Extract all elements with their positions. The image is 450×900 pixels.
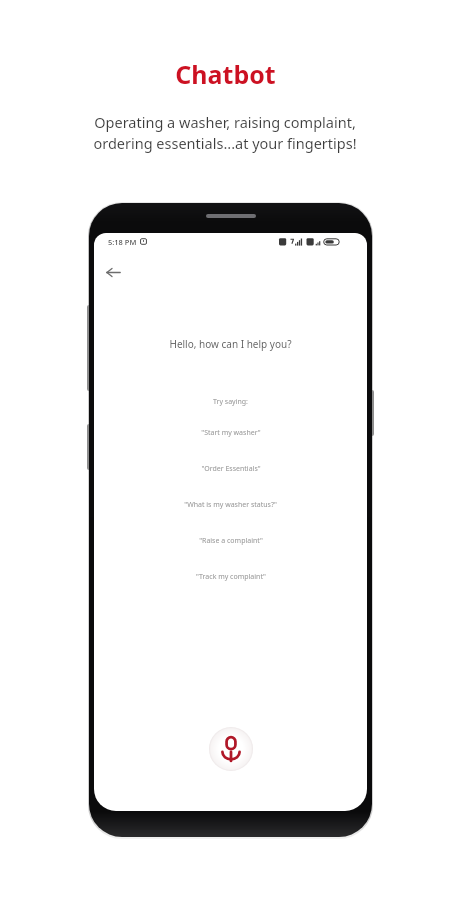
staticText: 5:18 PM <box>108 237 137 247</box>
staticText: Operating a washer, raising complaint, o… <box>93 112 357 154</box>
button[interactable]: Voice input microphone <box>209 727 253 771</box>
button[interactable]: "Raise a complaint" <box>94 536 367 546</box>
button[interactable]: "What is my washer status?" <box>94 500 367 510</box>
staticText: Chatbot <box>175 57 276 91</box>
button[interactable]: Back <box>96 255 130 289</box>
button[interactable]: "Track my complaint" <box>94 572 367 582</box>
staticText: "Raise a complaint" <box>199 536 263 546</box>
staticText: "Track my complaint" <box>196 572 266 582</box>
staticText: "Start my washer" <box>201 428 261 438</box>
staticText: "What is my washer status?" <box>184 500 277 510</box>
staticText: Try saying: <box>213 397 248 407</box>
staticText: Hello, how can I help you? <box>169 337 292 351</box>
staticText: "Order Essentials" <box>201 464 261 474</box>
button[interactable]: "Start my washer" <box>94 428 367 438</box>
button[interactable]: "Order Essentials" <box>94 464 367 474</box>
